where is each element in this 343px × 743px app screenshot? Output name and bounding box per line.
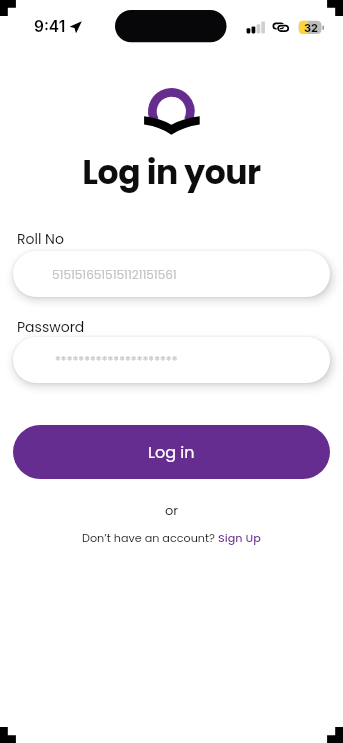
staticText: Don’t have an account?: [82, 530, 218, 546]
staticText: 5151516515151121151561: [52, 266, 177, 283]
staticText: Roll No: [17, 229, 64, 249]
staticText: 9:41: [34, 17, 66, 36]
staticText: Password: [17, 317, 85, 337]
button[interactable]: 5151516515151121151561: [13, 251, 330, 297]
staticText: or: [0, 501, 343, 519]
staticText: 32: [304, 21, 319, 34]
button[interactable]: *********************: [13, 337, 330, 383]
staticText: Log in: [148, 441, 195, 463]
staticText: *********************: [55, 352, 178, 369]
staticText: Log in your: [0, 149, 343, 195]
button[interactable]: Log in: [13, 425, 330, 479]
button[interactable]: Sign Up: [218, 530, 261, 546]
